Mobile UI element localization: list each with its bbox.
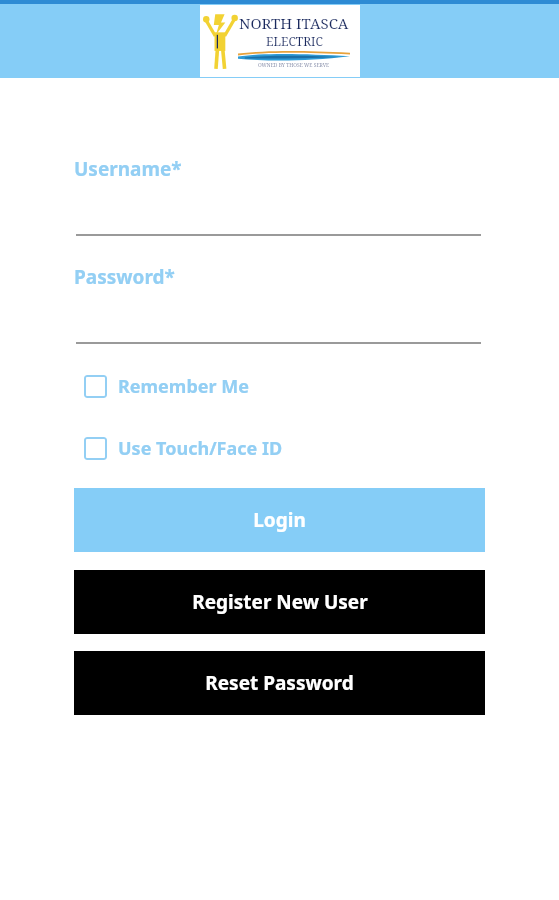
button[interactable]: Remember Me [84, 374, 249, 399]
staticText: OWNED BY THOSE WE SERVE [258, 62, 330, 69]
button[interactable]: Use Touch/Face ID [84, 436, 283, 461]
staticText: NORTH ITASCA [239, 13, 349, 33]
button[interactable]: Login [74, 488, 485, 552]
staticText: Username* [74, 156, 182, 182]
button[interactable]: Register New User [74, 570, 485, 634]
staticText: Reset Password [205, 670, 354, 696]
staticText: Register New User [192, 589, 368, 615]
staticText: Password* [74, 264, 175, 290]
staticText: ELECTRIC [266, 33, 323, 49]
button[interactable]: Reset Password [74, 651, 485, 715]
staticText: Login [253, 507, 306, 533]
staticText: Remember Me [118, 374, 249, 399]
staticText: Use Touch/Face ID [118, 436, 283, 461]
